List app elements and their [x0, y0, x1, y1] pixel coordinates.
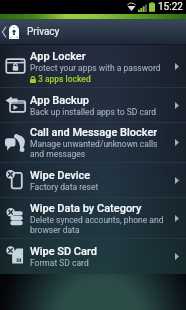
staticText: Call and Message Blocker — [30, 126, 158, 139]
button[interactable]: Wipe SD Card — [0, 239, 186, 273]
staticText: Wipe Device — [30, 169, 91, 182]
button[interactable]: Wipe Device — [0, 163, 186, 197]
staticText: 3 apps locked — [38, 74, 91, 84]
staticText: Privacy — [27, 26, 60, 38]
staticText: App Backup — [30, 94, 89, 107]
button[interactable]: Wipe Data by Category — [0, 198, 186, 238]
staticText: Back up installed apps to SD card — [30, 107, 157, 117]
button[interactable]: App Locker — [0, 45, 186, 87]
staticText: Factory data reset — [30, 182, 99, 192]
button[interactable]: App Backup — [0, 88, 186, 122]
staticText: Delete synced accounts, phone and browse… — [30, 215, 165, 235]
staticText: Manage unwanted/unknown calls and messag… — [30, 139, 165, 159]
staticText: Wipe SD Card — [30, 245, 97, 258]
staticText: Format SD card — [30, 258, 89, 268]
staticText: Protect your apps with a password — [30, 63, 161, 73]
staticText: Wipe Data by Category — [30, 202, 142, 215]
button[interactable]: Call and Message Blocker — [0, 123, 186, 162]
staticText: 15:22 — [158, 1, 183, 13]
staticText: App Locker — [30, 50, 86, 63]
button[interactable]: Navigate up — [0, 19, 21, 44]
